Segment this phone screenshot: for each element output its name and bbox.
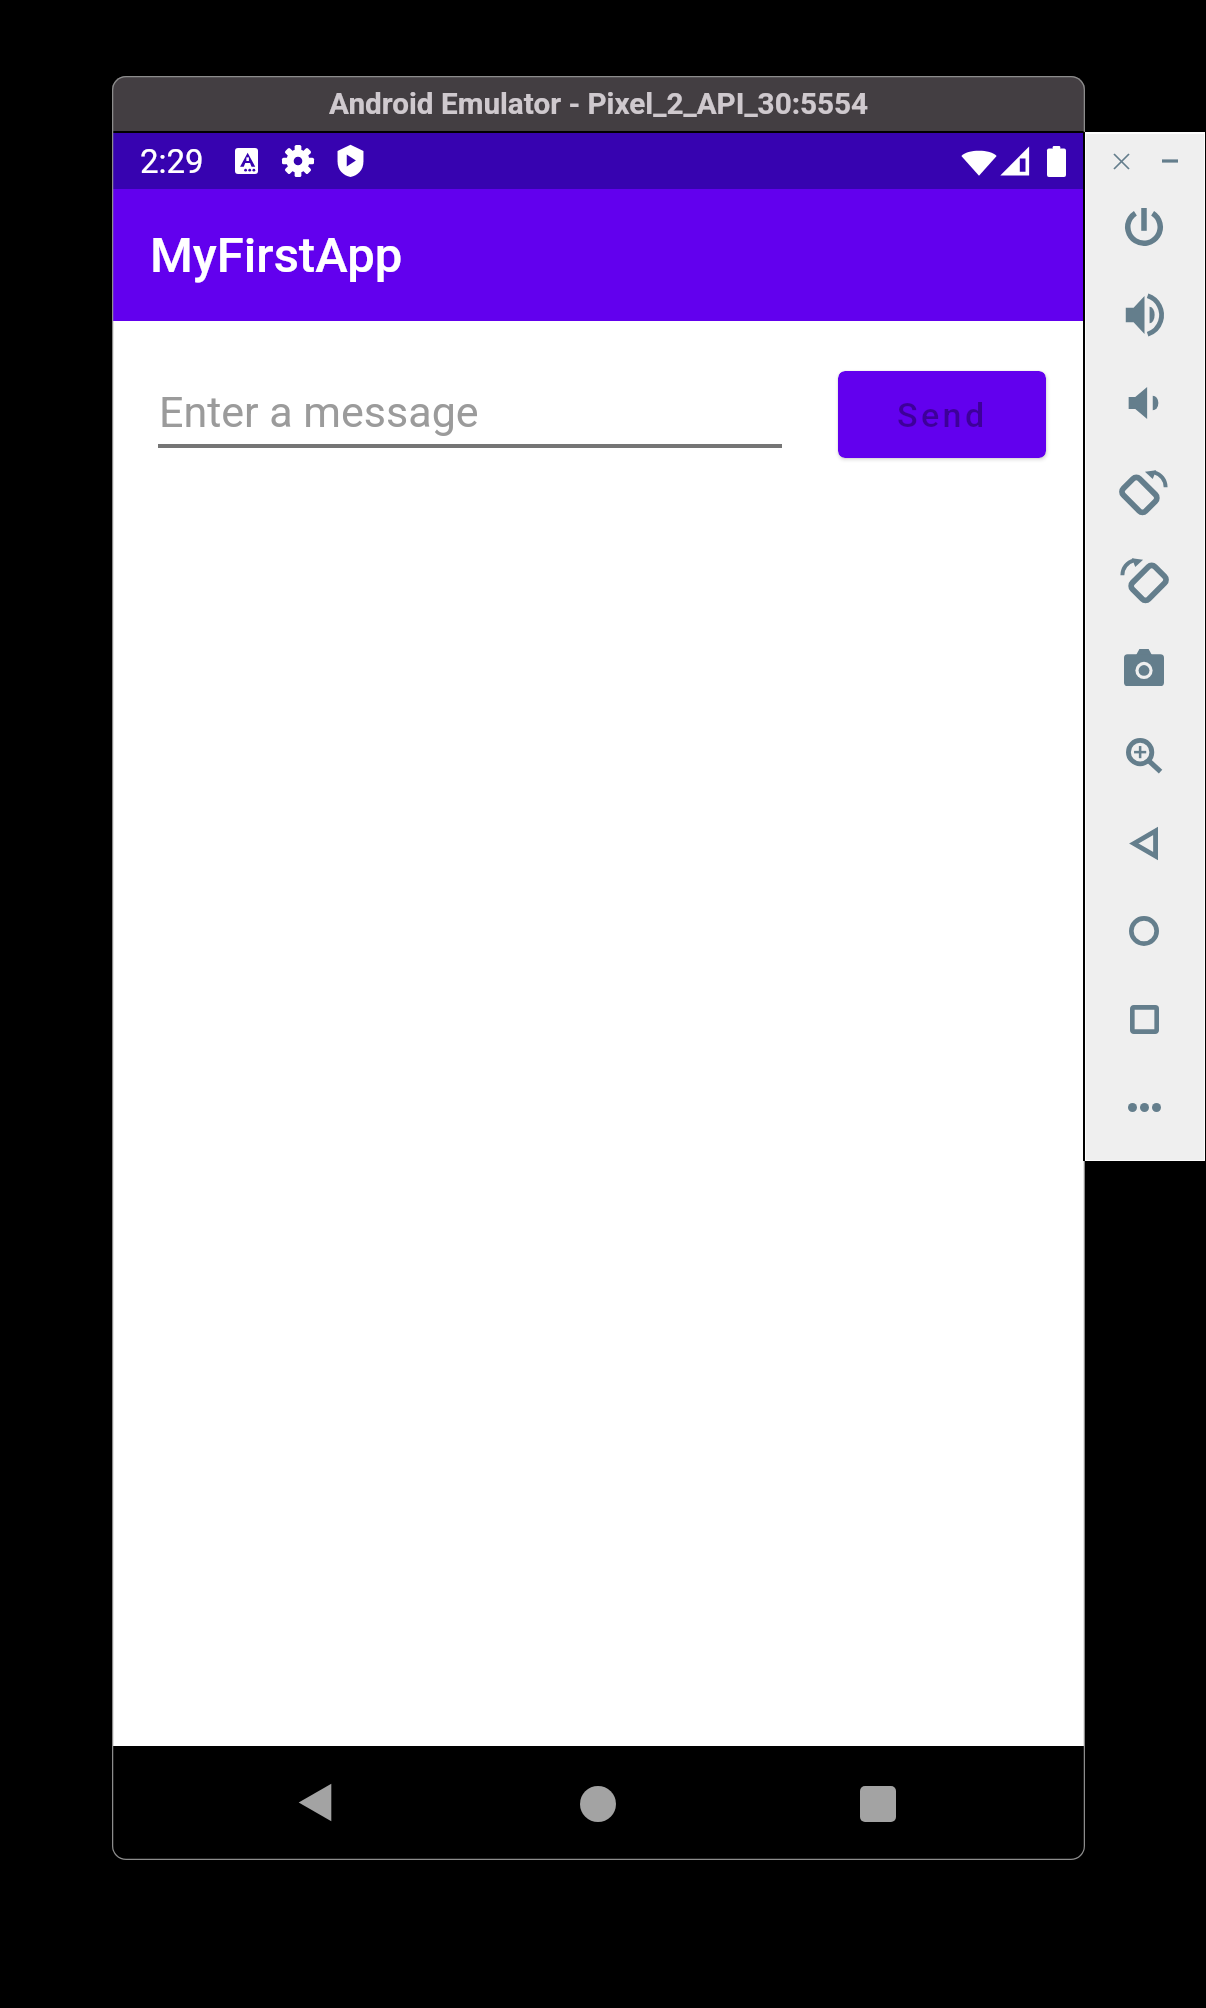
button[interactable]: Overview <box>1100 980 1188 1058</box>
staticText: 2:29 <box>140 142 204 181</box>
button[interactable]: Close <box>1092 131 1150 191</box>
button[interactable]: Volume down <box>1100 364 1188 442</box>
button[interactable]: Minimize <box>1141 131 1199 191</box>
button[interactable]: Recent apps <box>843 1769 913 1839</box>
staticText: Android Emulator - Pixel_2_API_30:5554 <box>329 86 869 121</box>
button[interactable]: Home <box>563 1769 633 1839</box>
button[interactable]: Power <box>1100 188 1188 266</box>
button[interactable]: Take screenshot <box>1100 628 1188 706</box>
staticText: Enter a message <box>159 387 479 437</box>
button[interactable]: Volume up <box>1100 276 1188 354</box>
button[interactable]: Back <box>1100 804 1188 882</box>
button[interactable]: Send <box>838 371 1046 458</box>
button[interactable]: Zoom <box>1100 716 1188 794</box>
staticText: MyFirstApp <box>150 227 403 284</box>
button[interactable]: Rotate left <box>1100 452 1188 530</box>
staticText: Send <box>897 395 988 435</box>
button[interactable]: Rotate right <box>1100 540 1188 618</box>
button[interactable]: More <box>1100 1068 1188 1146</box>
button[interactable]: Home <box>1100 892 1188 970</box>
button[interactable]: Back <box>280 1767 350 1837</box>
button[interactable]: Enter a message <box>158 366 782 456</box>
